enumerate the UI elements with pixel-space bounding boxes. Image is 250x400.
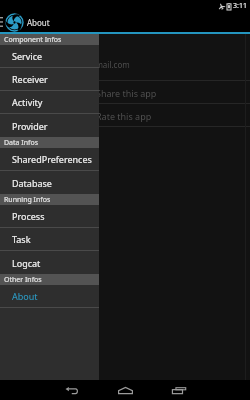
button[interactable]: Rate this app — [0, 104, 250, 127]
staticText: Data Infos — [4, 138, 39, 148]
button[interactable]: Recent apps — [166, 380, 192, 400]
staticText: Rate this app — [96, 110, 152, 122]
button[interactable]: Database — [0, 171, 99, 194]
button[interactable]: Receiver — [0, 68, 99, 90]
button[interactable]: About — [0, 285, 99, 307]
staticText: androidtools.dev@gmail.com — [20, 59, 130, 70]
staticText: Other Infos — [4, 275, 42, 285]
button[interactable]: Share this app — [0, 81, 250, 104]
staticText: About — [27, 17, 50, 28]
staticText: About — [12, 290, 38, 302]
button[interactable]: Activity — [0, 91, 99, 113]
staticText: Component Infos — [4, 35, 62, 45]
staticText: Service — [12, 50, 43, 62]
staticText: Share this app — [96, 87, 157, 99]
button[interactable]: SharedPreferences — [0, 148, 99, 170]
staticText: Database — [12, 177, 52, 189]
button[interactable]: Logcat — [0, 251, 99, 274]
staticText: Task — [12, 233, 31, 245]
button[interactable]: Home — [112, 380, 138, 400]
staticText: 3:11 — [233, 1, 247, 11]
staticText: Process — [12, 210, 45, 222]
button[interactable]: Open navigation drawer — [0, 12, 5, 32]
button[interactable]: Provider — [0, 114, 99, 137]
staticText: SharedPreferences — [12, 153, 92, 165]
staticText: Activity — [12, 96, 43, 108]
button[interactable]: Back — [58, 380, 84, 400]
button[interactable]: Process — [0, 205, 99, 227]
staticText: Running Infos — [4, 195, 51, 205]
staticText: Logcat — [12, 257, 41, 269]
staticText: Receiver — [12, 73, 48, 85]
button[interactable]: Service — [0, 45, 99, 67]
staticText: Provider — [12, 120, 48, 132]
button[interactable]: Task — [0, 228, 99, 250]
